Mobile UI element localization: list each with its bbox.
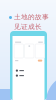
staticText: 见证成长 <box>14 23 42 31</box>
staticText: 土地的故事 <box>14 13 49 21</box>
